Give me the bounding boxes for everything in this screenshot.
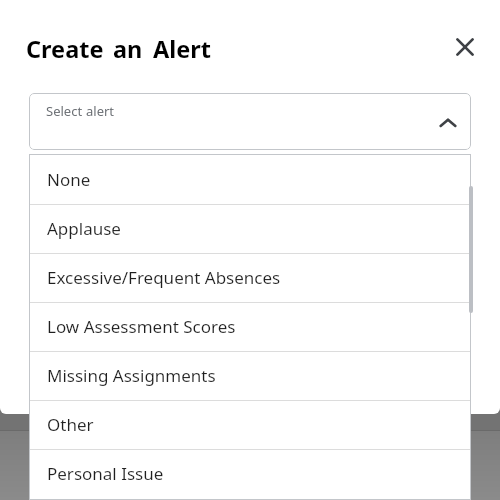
button[interactable]: Low Assessment Scores <box>29 303 471 352</box>
staticText: an <box>113 33 143 65</box>
staticText: Create <box>26 33 104 65</box>
staticText: Low Assessment Scores <box>47 315 236 338</box>
staticText: Select <box>46 102 83 120</box>
staticText: alert <box>86 102 115 120</box>
staticText: None <box>47 168 91 191</box>
staticText: Other <box>47 413 94 436</box>
staticText: Applause <box>47 217 121 240</box>
button[interactable]: None <box>29 156 471 205</box>
staticText: Excessive/Frequent Absences <box>47 266 281 289</box>
staticText: Missing Assignments <box>47 364 216 387</box>
button[interactable]: Applause <box>29 205 471 254</box>
button[interactable]: Close <box>447 28 483 64</box>
button[interactable]: Select <box>29 93 471 150</box>
button[interactable]: Personal Issue <box>29 450 471 499</box>
staticText: Alert <box>153 33 211 65</box>
staticText: Personal Issue <box>47 462 164 485</box>
button[interactable]: Missing Assignments <box>29 352 471 401</box>
button[interactable]: Other <box>29 401 471 450</box>
button[interactable]: Excessive/Frequent Absences <box>29 254 471 303</box>
